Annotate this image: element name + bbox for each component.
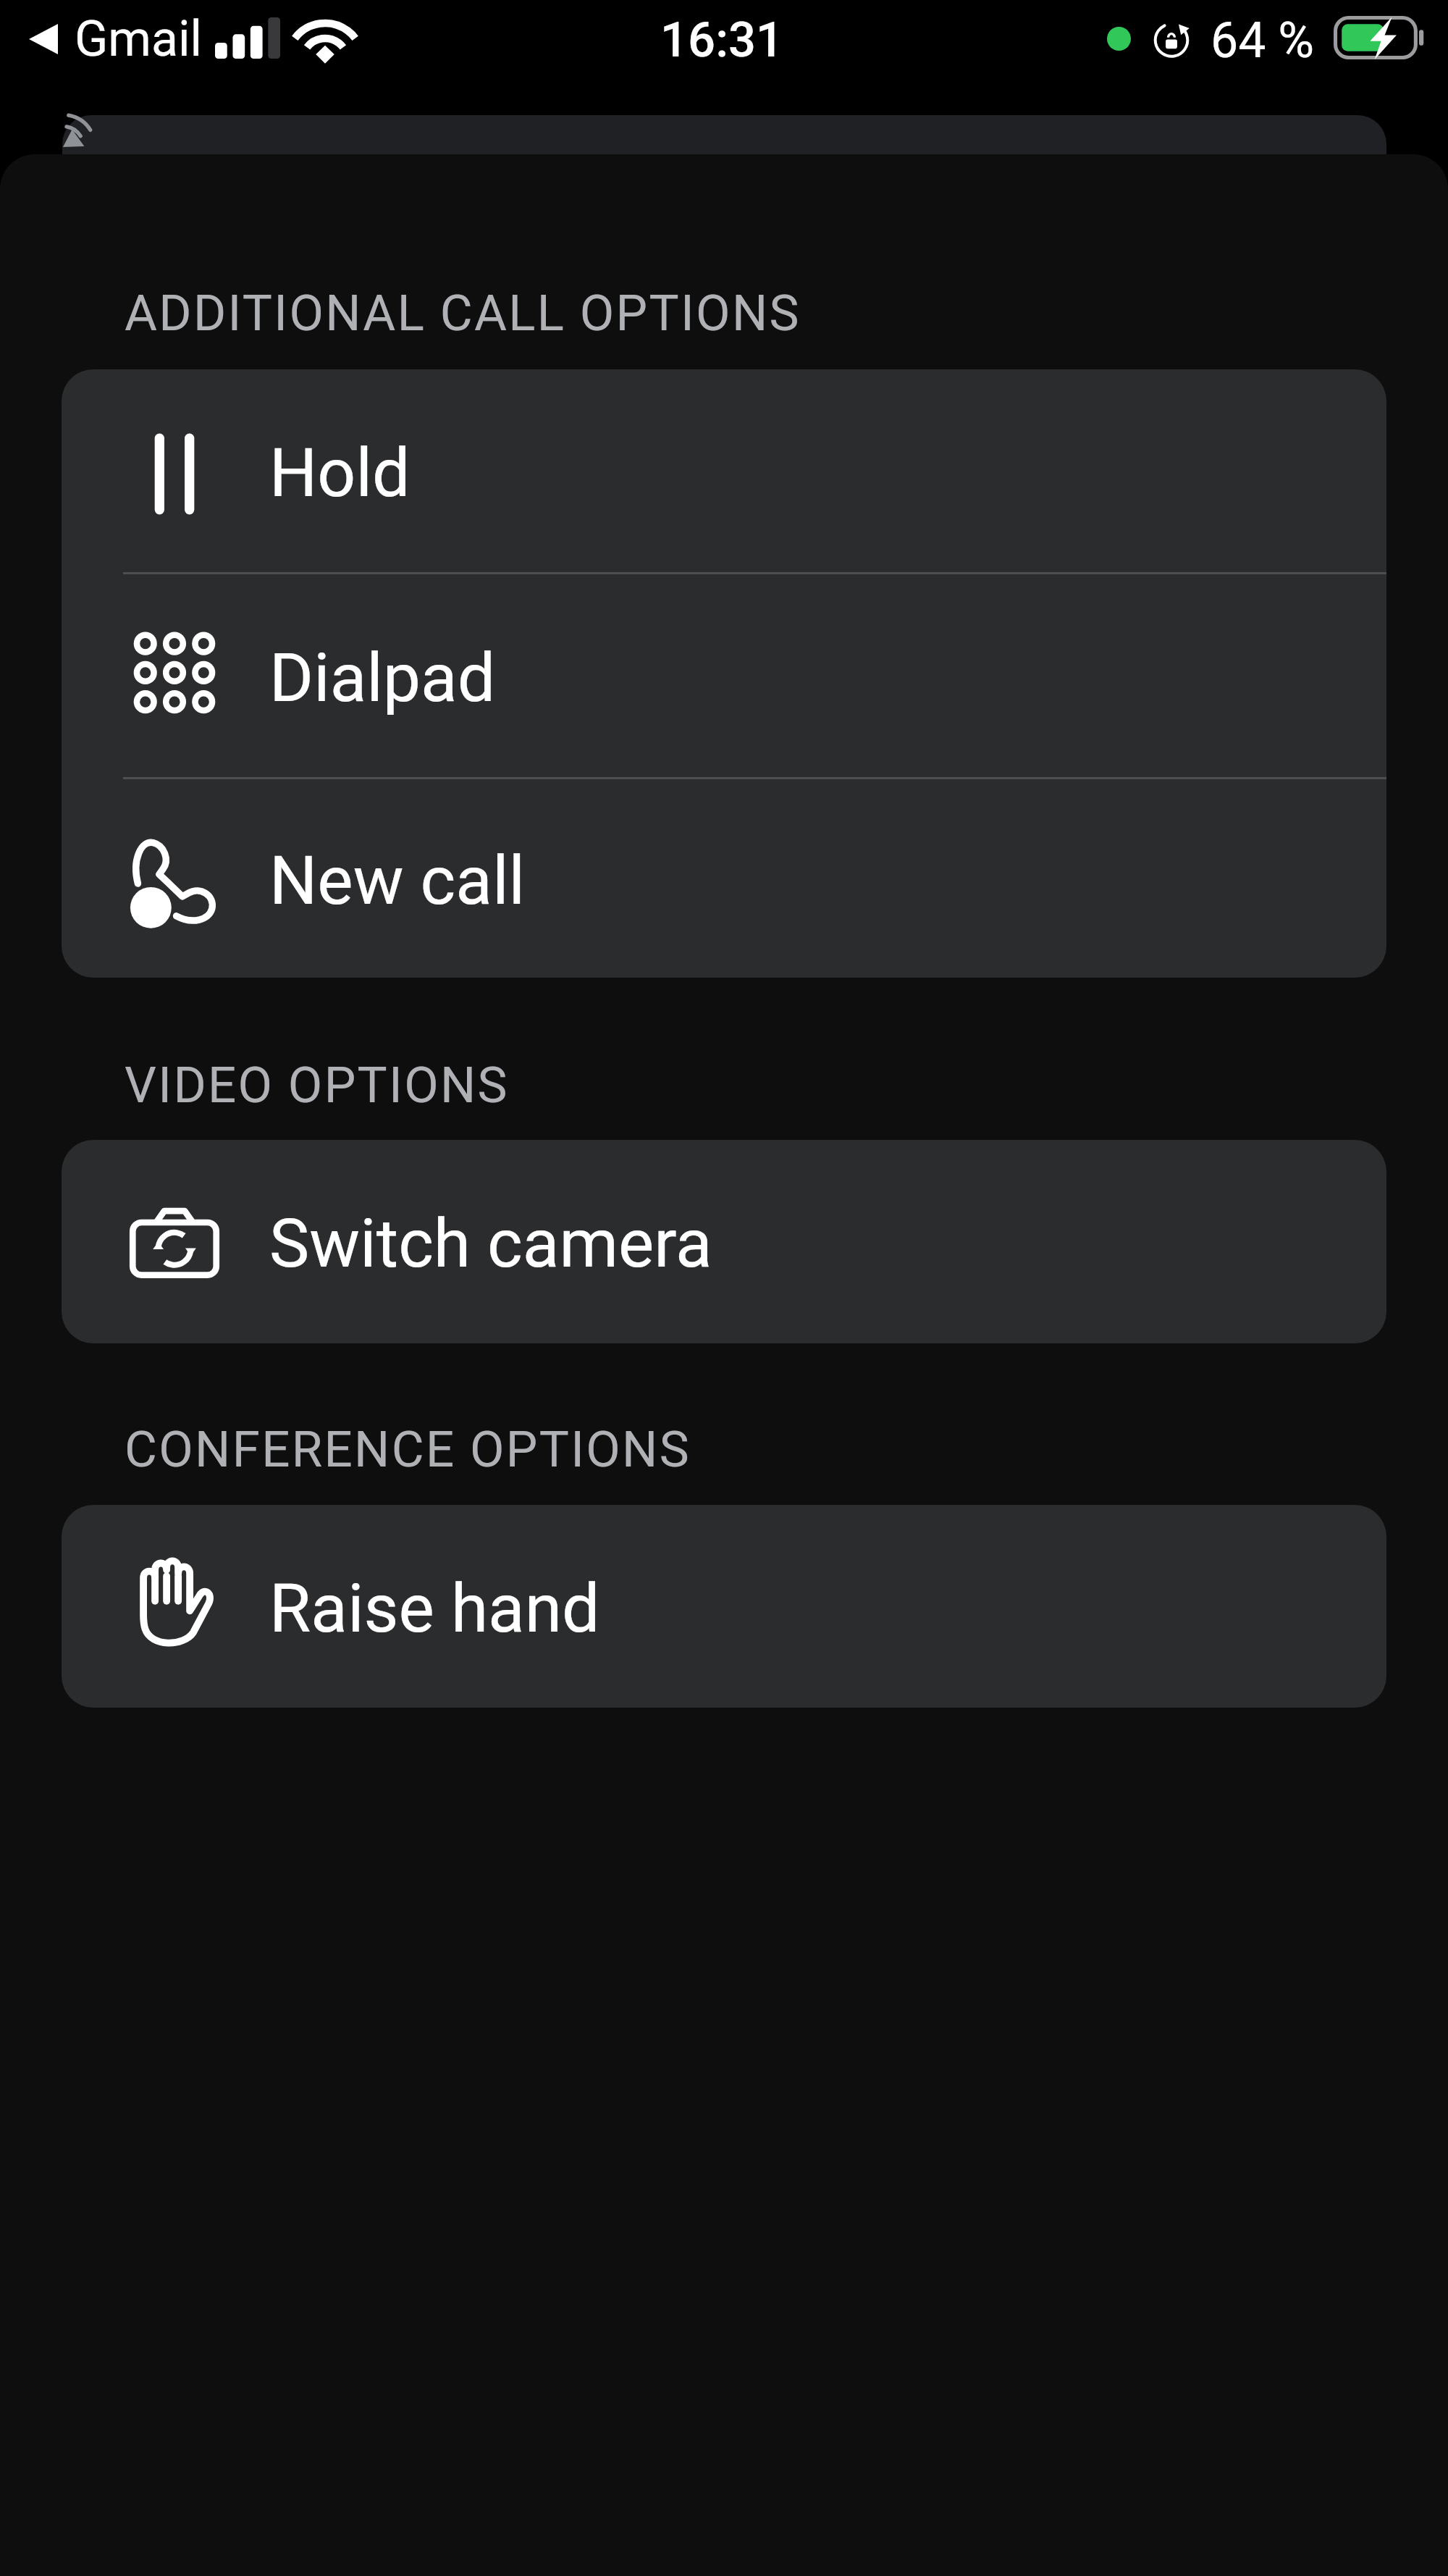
staticText: Gmail	[75, 10, 203, 68]
staticText: VIDEO OPTIONS	[125, 1056, 509, 1115]
staticText: Hold	[269, 434, 411, 513]
staticText: Dialpad	[269, 639, 496, 718]
button[interactable]: Hold	[62, 369, 1386, 572]
staticText: 16:31	[660, 12, 784, 69]
staticText: 64 %	[1211, 12, 1315, 70]
button[interactable]: New call	[62, 779, 1386, 978]
button[interactable]: Raise hand	[62, 1505, 1386, 1708]
staticText: New call	[269, 842, 526, 920]
staticText: Raise hand	[269, 1569, 600, 1648]
staticText: ADDITIONAL CALL OPTIONS	[125, 284, 801, 343]
button[interactable]: Dialpad	[62, 574, 1386, 777]
staticText: Switch camera	[269, 1204, 712, 1283]
button[interactable]: Switch camera	[62, 1140, 1386, 1343]
staticText: CONFERENCE OPTIONS	[125, 1420, 691, 1479]
